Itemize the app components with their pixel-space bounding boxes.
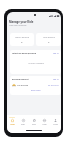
staticText: Manage your Ride (9, 20, 34, 24)
staticText: 3 (48, 40, 50, 43)
staticText: Total Booking (43, 36, 55, 39)
button[interactable]: Total Booking (36, 33, 61, 46)
staticText: Rides (21, 123, 25, 125)
button[interactable]: Home (7, 115, 17, 128)
staticText: Booking Request (12, 78, 29, 81)
staticText: Home (10, 123, 15, 125)
button[interactable]: See All (53, 52, 59, 55)
staticText: Cab Booking (17, 84, 29, 87)
button[interactable]: See All (53, 78, 59, 81)
staticText: See All (53, 52, 59, 55)
staticText: No Data Available (28, 62, 44, 65)
staticText: Wallet (42, 123, 47, 125)
staticText: 0 (21, 40, 23, 43)
button[interactable]: Book (28, 115, 39, 128)
button[interactable]: Read More (31, 89, 41, 92)
staticText: Today's Booking (15, 36, 30, 39)
button[interactable]: Today's Booking (10, 33, 34, 46)
staticText: 22 Oct 2024 (48, 84, 59, 87)
button[interactable]: Wallet (39, 115, 50, 128)
staticText: Track your bookings (9, 24, 27, 27)
button[interactable]: Profile (50, 115, 61, 128)
button[interactable]: Rides (17, 115, 28, 128)
staticText: Profile (53, 123, 58, 125)
button[interactable]: Taxi (12, 83, 59, 87)
other: Taxi (12, 83, 16, 87)
staticText: Latest/on going booking (12, 52, 36, 55)
staticText: Book (32, 123, 36, 125)
staticText: Read More (31, 89, 41, 92)
staticText: See All (53, 78, 59, 81)
